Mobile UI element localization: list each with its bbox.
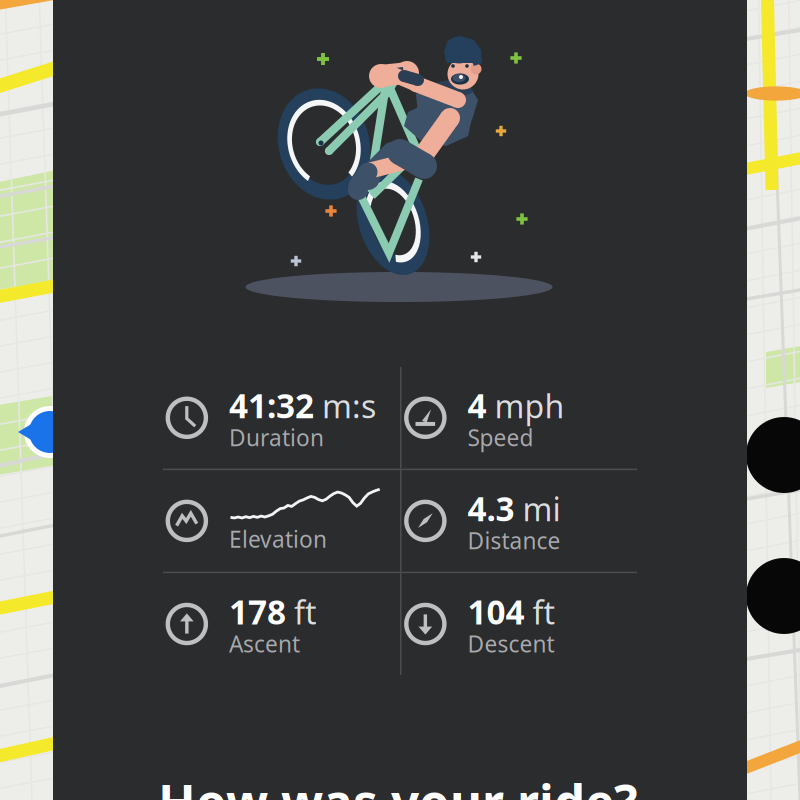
staticText: ft [294,591,317,633]
staticText: Distance [468,525,561,556]
button[interactable]: 41:32 [163,367,400,469]
staticText: ft [533,591,556,633]
button[interactable]: 104 [401,573,637,675]
staticText: 4.3 [468,486,515,530]
staticText: mi [523,488,561,530]
staticText: Descent [468,629,555,659]
staticText: Elevation [229,524,327,554]
staticText: Duration [229,422,324,452]
button[interactable]: Elevation [163,470,400,572]
staticText: mph [495,384,565,427]
button[interactable]: 178 [163,573,400,675]
staticText: How was your ride? [158,769,638,800]
staticText: m:s [322,384,376,427]
staticText: Speed [468,422,534,452]
button[interactable]: 4.3 [401,470,637,572]
staticText: Ascent [229,629,300,659]
staticText: 4 [468,383,487,427]
staticText: 41:32 [229,383,314,427]
button[interactable]: 4 [401,367,637,469]
staticText: 178 [229,589,286,634]
staticText: 104 [468,589,525,634]
